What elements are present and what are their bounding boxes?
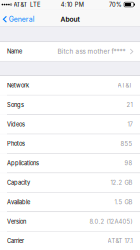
button[interactable]: Name bbox=[0, 42, 140, 61]
button[interactable]: Songs bbox=[0, 95, 140, 114]
button[interactable]: Videos bbox=[0, 115, 140, 134]
staticText: Songs bbox=[7, 101, 24, 108]
staticText: 21 bbox=[126, 101, 132, 108]
staticText: Available bbox=[7, 199, 30, 205]
staticText: AT&T 17.1 bbox=[107, 237, 132, 244]
button[interactable]: Version bbox=[0, 212, 140, 231]
staticText: 855 bbox=[120, 140, 132, 147]
staticText: Applications bbox=[7, 160, 39, 167]
staticText: 8.0.2 (12A405) bbox=[89, 218, 132, 225]
button[interactable]: Capacity bbox=[0, 173, 140, 192]
button[interactable]: Photos bbox=[0, 134, 140, 153]
button[interactable]: Network bbox=[0, 76, 140, 95]
staticText: AT&T bbox=[13, 1, 27, 8]
staticText: General bbox=[9, 15, 35, 23]
staticText: Bitch ass mother f**** bbox=[57, 48, 125, 55]
staticText: 70% bbox=[109, 1, 122, 8]
button[interactable]: General bbox=[0, 9, 37, 26]
button[interactable]: Carrier bbox=[0, 231, 140, 250]
staticText: AT&T bbox=[117, 82, 132, 89]
staticText: Version bbox=[7, 218, 26, 225]
staticText: 12.2 GB bbox=[110, 179, 132, 186]
staticText: 98 bbox=[124, 160, 132, 167]
staticText: Capacity bbox=[7, 179, 30, 186]
staticText: Carrier bbox=[7, 237, 24, 244]
staticText: About bbox=[60, 15, 79, 23]
staticText: Name bbox=[7, 48, 22, 55]
staticText: 1.5 GB bbox=[114, 199, 132, 206]
staticText: Photos bbox=[7, 140, 25, 147]
staticText: Videos bbox=[7, 121, 25, 128]
staticText: 4:10 PM bbox=[61, 1, 84, 8]
staticText: LTE bbox=[30, 1, 40, 8]
button[interactable]: Applications bbox=[0, 154, 140, 173]
button[interactable]: Available bbox=[0, 193, 140, 211]
staticText: 17 bbox=[127, 121, 132, 128]
staticText: Network bbox=[7, 82, 29, 89]
